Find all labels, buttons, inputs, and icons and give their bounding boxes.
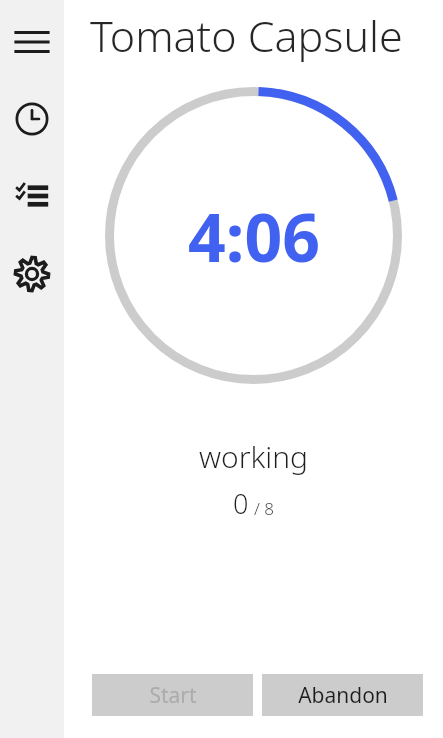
button[interactable]: Settings <box>8 250 56 298</box>
staticText: / 8 <box>254 497 275 520</box>
button[interactable]: Timer <box>8 95 56 143</box>
staticText: Tomato Capsule <box>90 6 403 65</box>
staticText: 4:06 <box>188 191 320 281</box>
staticText: 0 <box>233 485 249 522</box>
staticText: Start <box>149 681 197 710</box>
staticText: Abandon <box>298 681 388 710</box>
button[interactable]: Menu <box>8 18 56 66</box>
button[interactable]: Tasks <box>8 172 56 220</box>
button[interactable]: Start <box>92 674 253 716</box>
staticText: working <box>64 436 443 477</box>
button[interactable]: Abandon <box>262 674 423 716</box>
